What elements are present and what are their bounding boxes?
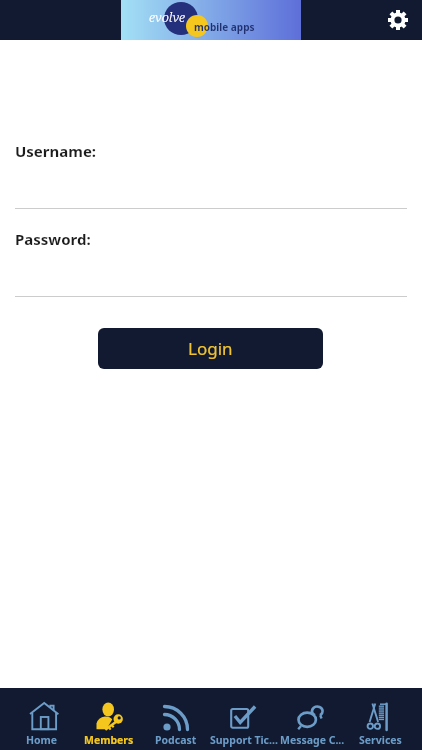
staticText: mobile apps: [194, 20, 255, 34]
staticText: Podcast: [155, 733, 197, 747]
staticText: Username:: [15, 141, 97, 161]
button[interactable]: Services: [346, 688, 414, 750]
staticText: Home: [26, 733, 58, 747]
button[interactable]: [386, 8, 410, 32]
button[interactable]: Members: [75, 688, 142, 750]
staticText: Login: [188, 337, 233, 360]
staticText: evolve: [149, 8, 186, 26]
button[interactable]: Podcast: [142, 688, 210, 750]
button[interactable]: Support Tic...: [210, 688, 278, 750]
button[interactable]: Home: [8, 688, 75, 750]
staticText: Support Tic...: [210, 733, 278, 747]
staticText: Services: [359, 733, 402, 747]
staticText: Password:: [15, 229, 91, 249]
button[interactable]: Login: [98, 328, 323, 369]
staticText: Message C...: [280, 733, 345, 747]
button[interactable]: Message C...: [278, 688, 346, 750]
staticText: Members: [84, 733, 134, 747]
